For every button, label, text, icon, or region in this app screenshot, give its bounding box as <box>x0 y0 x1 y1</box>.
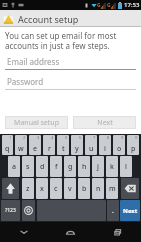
staticText: z <box>26 184 30 194</box>
staticText: 1 <box>9 135 12 140</box>
staticText: a <box>12 162 17 172</box>
button[interactable]: Next <box>73 116 136 129</box>
staticText: n <box>96 184 101 194</box>
staticText: h <box>82 162 87 172</box>
staticText: 9 <box>121 135 124 140</box>
button[interactable]: 9 <box>113 135 125 155</box>
staticText: 5 <box>65 135 68 140</box>
staticText: G <box>97 2 101 9</box>
staticText: 2 <box>23 135 26 140</box>
staticText: Email address <box>7 56 60 67</box>
staticText: w <box>18 144 24 154</box>
button[interactable]: ?123 <box>1 200 20 221</box>
staticText: Next <box>97 118 113 128</box>
staticText: . <box>112 206 114 216</box>
staticText: k <box>110 162 114 172</box>
button[interactable]: v <box>64 178 76 199</box>
staticText: Manual setup <box>14 118 59 128</box>
staticText: g <box>68 162 73 172</box>
button[interactable]: m <box>106 178 118 199</box>
staticText: b <box>82 184 87 194</box>
staticText: l <box>125 162 127 172</box>
staticText: d <box>40 162 45 172</box>
staticText: e <box>33 144 38 154</box>
staticText: 4 <box>51 135 54 140</box>
staticText: r <box>48 144 51 154</box>
button[interactable]: Recent apps <box>94 222 141 242</box>
button[interactable]: Password <box>5 76 136 90</box>
staticText: s <box>26 162 30 172</box>
button[interactable]: f <box>50 156 62 177</box>
button[interactable]: s <box>22 156 34 177</box>
staticText: m <box>109 184 116 194</box>
button[interactable]: 3 <box>29 135 41 155</box>
staticText: t <box>62 144 65 154</box>
staticText: 7 <box>93 135 96 140</box>
button[interactable]: c <box>50 178 62 199</box>
button[interactable]: a <box>8 156 20 177</box>
button[interactable]: Next <box>120 200 140 221</box>
staticText: q <box>5 144 10 154</box>
button[interactable]: 7 <box>85 135 97 155</box>
button[interactable]: l <box>120 156 132 177</box>
button[interactable]: Shift <box>2 178 19 199</box>
button[interactable]: z <box>22 178 34 199</box>
button[interactable]: Manual setup <box>5 116 68 129</box>
staticText: Account setup <box>18 13 79 25</box>
staticText: You can set up email for most accounts i… <box>5 30 136 51</box>
button[interactable]: Home <box>47 222 94 242</box>
staticText: Password <box>7 76 44 87</box>
staticText: y <box>75 144 79 154</box>
staticText: i <box>104 144 106 154</box>
staticText: 8 <box>107 135 110 140</box>
button[interactable]: j <box>92 156 104 177</box>
staticText: j <box>97 162 99 172</box>
staticText: 6 <box>79 135 82 140</box>
button[interactable]: 4 <box>43 135 55 155</box>
button[interactable]: h <box>78 156 90 177</box>
staticText: c <box>54 184 58 194</box>
button[interactable]: 6 <box>71 135 83 155</box>
button[interactable]: Email address <box>5 56 136 70</box>
staticText: v <box>68 184 72 194</box>
staticText: o <box>117 144 122 154</box>
button[interactable]: 0 <box>127 135 139 155</box>
button[interactable]: 8 <box>99 135 111 155</box>
button[interactable]: x <box>36 178 48 199</box>
button[interactable]: 2 <box>15 135 27 155</box>
button[interactable]: k <box>106 156 118 177</box>
staticText: 0 <box>135 135 138 140</box>
button[interactable]: . <box>107 200 119 221</box>
staticText: u <box>89 144 94 154</box>
button[interactable]: 5 <box>57 135 69 155</box>
staticText: Next <box>123 207 138 215</box>
button[interactable]: At sign <box>22 200 35 221</box>
staticText: ?123 <box>5 207 16 214</box>
staticText: G <box>107 2 111 9</box>
button[interactable]: g <box>64 156 76 177</box>
button[interactable]: Backspace <box>121 178 139 199</box>
button[interactable]: Hide keyboard <box>0 222 47 242</box>
button[interactable]: d <box>36 156 48 177</box>
staticText: 3 <box>37 135 40 140</box>
staticText: x <box>40 184 44 194</box>
staticText: p <box>131 144 136 154</box>
button[interactable]: n <box>92 178 104 199</box>
button[interactable]: b <box>78 178 90 199</box>
button[interactable]: 1 <box>2 135 13 155</box>
staticText: f <box>55 162 58 172</box>
staticText: 17:53 <box>124 1 140 9</box>
